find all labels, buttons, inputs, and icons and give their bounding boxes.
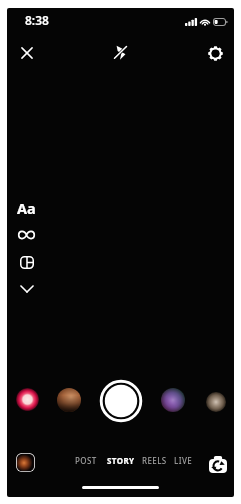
- button[interactable]: Effect: [161, 388, 185, 412]
- button[interactable]: More options: [13, 275, 41, 303]
- staticText: REELS: [142, 455, 167, 466]
- button[interactable]: Effect: [206, 392, 226, 412]
- button[interactable]: LIVE: [163, 451, 203, 469]
- staticText: STORY: [107, 455, 135, 466]
- button[interactable]: Switch camera: [205, 451, 231, 477]
- button[interactable]: Boomerang: [12, 221, 40, 249]
- staticText: 8:38: [25, 12, 49, 28]
- button[interactable]: Capture: [98, 378, 144, 424]
- button[interactable]: Text: [12, 194, 40, 222]
- staticText: Aa: [17, 198, 36, 218]
- button[interactable]: REELS: [134, 451, 174, 469]
- button[interactable]: Effect: [16, 388, 39, 411]
- button[interactable]: Layout: [13, 248, 41, 276]
- button[interactable]: POST: [66, 451, 106, 469]
- button[interactable]: Flash off: [105, 37, 135, 67]
- button[interactable]: Camera settings: [200, 38, 230, 68]
- button[interactable]: Close: [12, 38, 42, 68]
- staticText: POST: [75, 455, 97, 466]
- button[interactable]: Effect: [57, 388, 81, 412]
- button[interactable]: STORY: [101, 451, 141, 469]
- button[interactable]: Gallery: [16, 453, 35, 472]
- staticText: LIVE: [174, 455, 193, 466]
